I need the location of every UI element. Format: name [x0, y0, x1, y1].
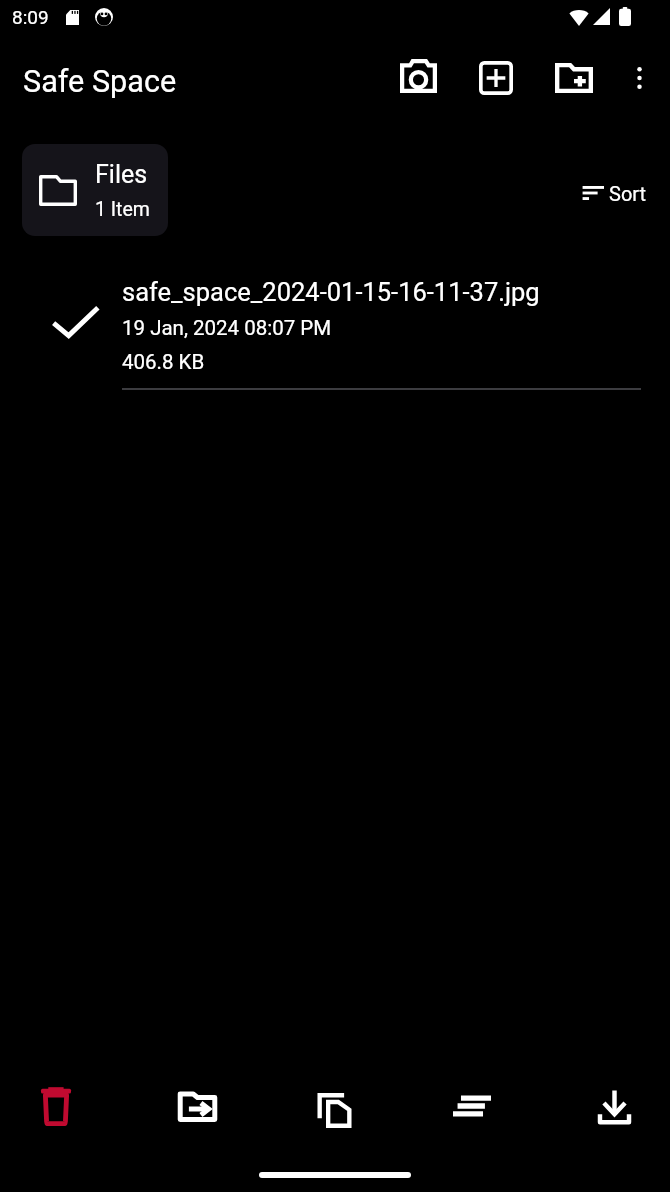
staticText: Sort — [609, 182, 647, 205]
button[interactable]: Create folder — [546, 50, 602, 106]
staticText: Safe Space — [23, 64, 177, 100]
staticText: safe_space_2024-01-15-16-11-37.jpg — [122, 277, 540, 307]
button[interactable]: Add file — [468, 50, 524, 106]
staticText: 19 Jan, 2024 08:07 PM — [122, 316, 332, 340]
button[interactable]: Delete — [22, 1072, 90, 1140]
staticText: 1 Item — [95, 198, 150, 221]
staticText: Files — [95, 160, 148, 189]
staticText: 8:09 — [12, 6, 49, 28]
button[interactable]: safe_space_2024-01-15-16-11-37.jpg — [0, 256, 670, 388]
button[interactable]: Copy — [300, 1075, 368, 1143]
button[interactable]: Sort — [578, 171, 651, 215]
button[interactable]: Save to device — [580, 1072, 648, 1140]
button[interactable]: Move to folder — [163, 1071, 231, 1139]
button[interactable]: More options — [611, 50, 667, 106]
button[interactable]: Take photo — [390, 48, 446, 104]
button[interactable]: Files — [22, 144, 168, 236]
button[interactable]: Rename — [438, 1072, 506, 1140]
staticText: 406.8 KB — [122, 350, 205, 374]
